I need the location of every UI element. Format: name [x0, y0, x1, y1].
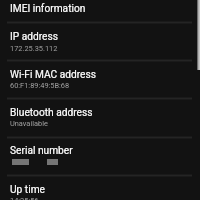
staticText: Unavailable	[10, 119, 48, 128]
staticText: 172.25.35.112	[10, 44, 58, 53]
staticText: Up time	[10, 184, 45, 196]
button[interactable]: IP address	[0, 23, 200, 60]
staticText: Bluetooth address	[10, 107, 93, 119]
button[interactable]: Up time	[0, 176, 200, 200]
button[interactable]: Bluetooth address	[0, 99, 200, 137]
staticText: Serial number	[10, 145, 73, 157]
staticText: 60:F1:89:49:5B:68	[10, 81, 70, 90]
staticText: IP address	[10, 31, 59, 43]
button[interactable]: IMEI information	[0, 0, 200, 22]
staticText: 14:25:56	[10, 196, 39, 200]
button[interactable]: Wi-Fi MAC address	[0, 61, 200, 98]
button[interactable]: Serial number	[0, 138, 200, 175]
staticText: Wi-Fi MAC address	[10, 69, 97, 81]
staticText: IMEI information	[10, 3, 86, 15]
